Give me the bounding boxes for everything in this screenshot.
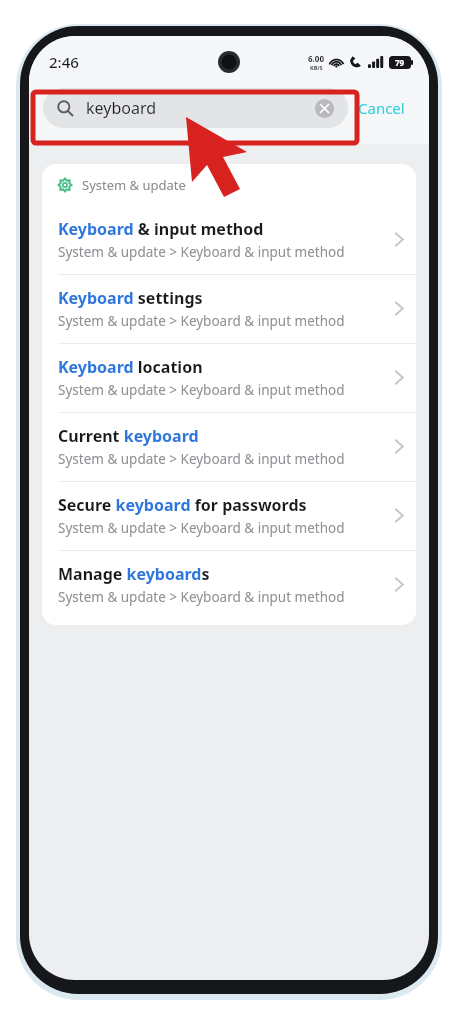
staticText: Keyboard settings [58, 287, 203, 309]
button[interactable]: Keyboard location [42, 344, 416, 412]
staticText: 2:46 [49, 52, 79, 72]
button[interactable]: Cancel [348, 90, 415, 126]
button[interactable]: Secure keyboard for passwords [42, 482, 416, 550]
staticText: Secure keyboard for passwords [58, 494, 307, 516]
staticText: 6.00 [308, 53, 324, 64]
staticText: Current keyboard [58, 425, 199, 447]
staticText: System & update > Keyboard & input metho… [58, 588, 348, 606]
staticText: System & update > Keyboard & input metho… [58, 381, 348, 399]
staticText: System & update > Keyboard & input metho… [58, 519, 348, 537]
staticText: System & update > Keyboard & input metho… [58, 312, 348, 330]
staticText: KB/S [310, 64, 323, 71]
button[interactable]: Manage keyboards [42, 551, 416, 619]
button[interactable]: keyboard [43, 88, 348, 128]
button[interactable]: Keyboard settings [42, 275, 416, 343]
staticText: Manage keyboards [58, 563, 210, 585]
staticText: keyboard [86, 97, 315, 119]
staticText: System & update > Keyboard & input metho… [58, 450, 348, 468]
staticText: Cancel [358, 98, 405, 118]
staticText: Keyboard location [58, 356, 203, 378]
button[interactable]: Clear search [315, 99, 334, 118]
staticText: Keyboard & input method [58, 218, 264, 240]
staticText: 79 [395, 57, 405, 68]
staticText: System & update [82, 176, 186, 194]
button[interactable]: Current keyboard [42, 413, 416, 481]
staticText: System & update > Keyboard & input metho… [58, 243, 348, 261]
button[interactable]: Keyboard & input method [42, 206, 416, 274]
